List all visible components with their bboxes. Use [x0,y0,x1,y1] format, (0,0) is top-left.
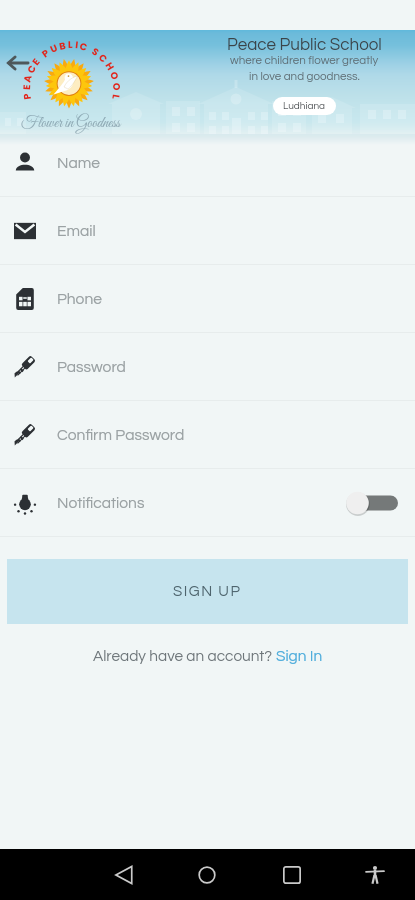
staticText: Phone [57,291,102,307]
staticText: in love and goodness. [249,70,360,82]
button[interactable]: Recent apps [271,854,313,896]
button[interactable]: Name [0,129,415,197]
button[interactable]: Home [186,854,228,896]
button[interactable]: Notifications toggle [346,490,398,516]
button[interactable]: Password [0,333,415,401]
button[interactable]: Back [103,854,145,896]
button[interactable]: Notifications [0,469,415,537]
staticText: Ludhiana [283,101,326,111]
button[interactable]: Sign In [276,648,323,664]
button[interactable]: Ludhiana [273,97,336,115]
staticText: SIGN UP [173,584,242,599]
button[interactable]: Accessibility [354,854,396,896]
staticText: Notifications [57,495,145,511]
staticText: Sign In [276,648,323,664]
button[interactable]: Email [0,197,415,265]
button[interactable]: Confirm Password [0,401,415,469]
staticText: Name [57,155,100,171]
staticText: Email [57,223,96,239]
staticText: where children flower greatly [230,54,379,66]
button[interactable]: Back [5,51,29,75]
button[interactable]: Phone [0,265,415,333]
staticText: Peace Public School [227,36,382,54]
staticText: Confirm Password [57,427,185,443]
staticText: Already have an account? [93,648,276,664]
staticText: Password [57,359,126,375]
button[interactable]: SIGN UP [7,559,408,624]
